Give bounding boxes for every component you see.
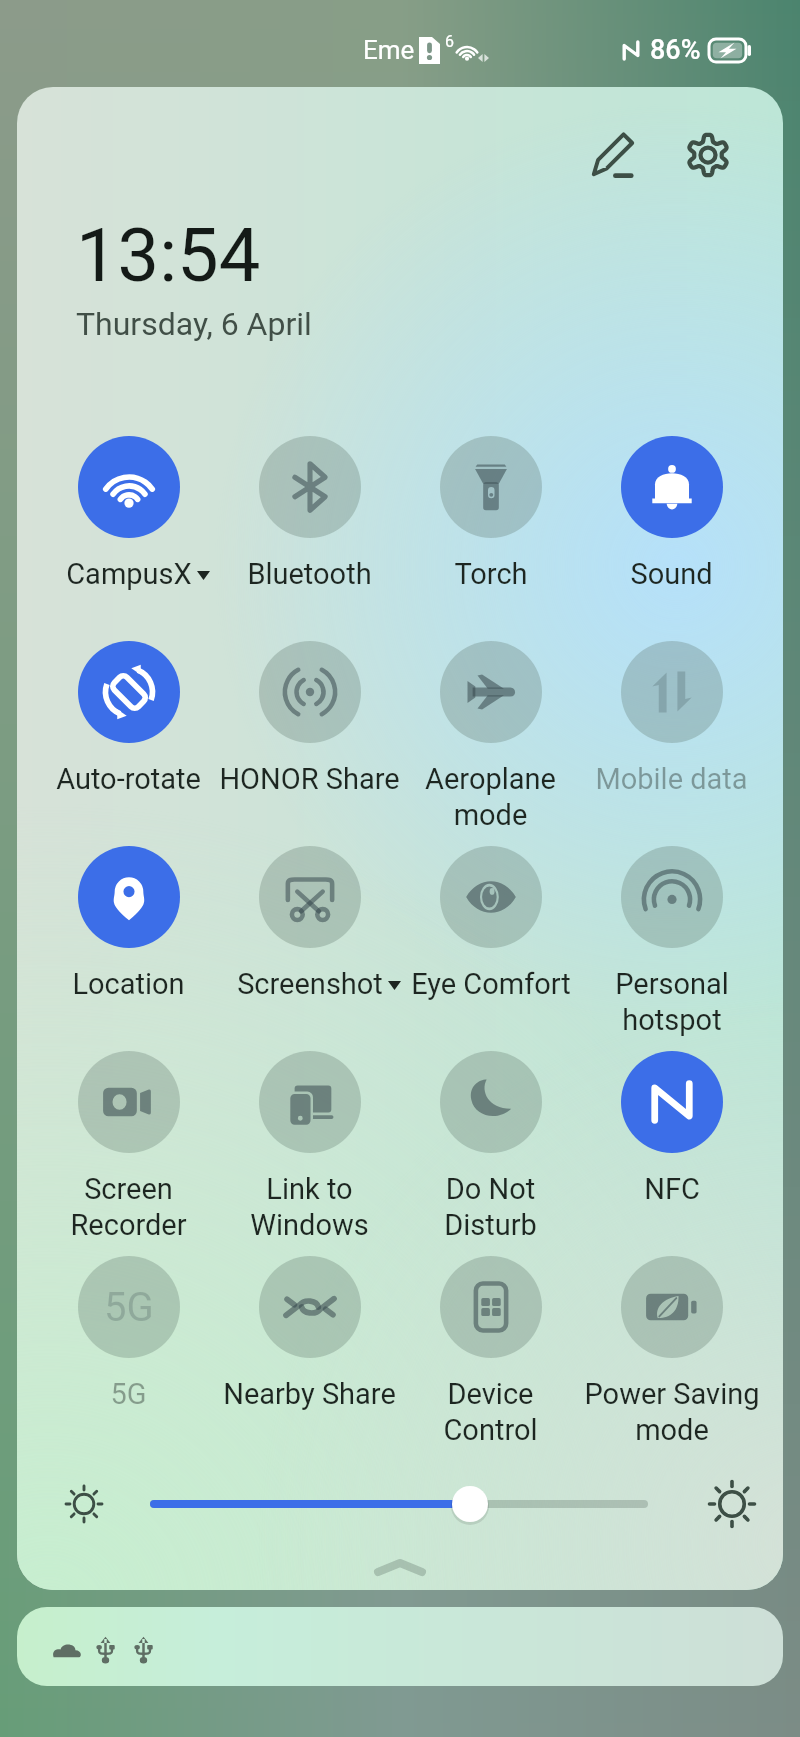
- button[interactable]: Screen Recorder: [38, 1051, 219, 1256]
- staticText: Mobile data: [595, 762, 748, 796]
- button[interactable]: Nearby Share: [219, 1256, 400, 1461]
- staticText: Eme: [363, 35, 415, 65]
- staticText: 5G: [104, 1284, 154, 1331]
- staticText: Power Saving mode: [584, 1377, 760, 1447]
- button[interactable]: Do Not Disturb: [400, 1051, 581, 1256]
- button[interactable]: Location: [38, 846, 219, 1051]
- staticText: Bluetooth: [247, 557, 372, 591]
- button[interactable]: Eye Comfort: [400, 846, 581, 1051]
- staticText: Thursday, 6 April: [76, 305, 312, 343]
- staticText: 6: [445, 32, 454, 51]
- button[interactable]: Aeroplane mode: [400, 641, 581, 846]
- button[interactable]: Personal hotspot: [581, 846, 762, 1051]
- staticText: HONOR Share: [219, 762, 400, 796]
- staticText: Screen Recorder: [70, 1172, 187, 1242]
- button[interactable]: Auto-rotate: [38, 641, 219, 846]
- staticText: Link to Windows: [250, 1172, 369, 1242]
- button[interactable]: Sound: [581, 436, 762, 641]
- staticText: Do Not Disturb: [444, 1172, 537, 1242]
- staticText: Device Control: [443, 1377, 538, 1447]
- staticText: Nearby Share: [223, 1377, 396, 1411]
- staticText: 86%: [650, 34, 701, 66]
- staticText: Location: [72, 967, 185, 1001]
- button[interactable]: Link to Windows: [219, 1051, 400, 1256]
- button[interactable]: NFC: [581, 1051, 762, 1256]
- button[interactable]: Mobile data: [581, 641, 762, 846]
- button[interactable]: [17, 1607, 783, 1686]
- staticText: CampusX: [66, 557, 192, 591]
- button[interactable]: Power Saving mode: [581, 1256, 762, 1461]
- staticText: 5G: [110, 1377, 147, 1411]
- staticText: Eye Comfort: [411, 967, 571, 1001]
- staticText: Sound: [630, 557, 713, 591]
- button[interactable]: HONOR Share: [219, 641, 400, 846]
- button[interactable]: Torch: [400, 436, 581, 641]
- button[interactable]: CampusX: [38, 436, 219, 641]
- button[interactable]: Edit quick settings: [583, 125, 643, 185]
- button[interactable]: Bluetooth: [219, 436, 400, 641]
- staticText: Aeroplane mode: [425, 762, 556, 832]
- staticText: 13:54: [76, 212, 261, 299]
- staticText: Personal hotspot: [615, 967, 729, 1037]
- staticText: Torch: [454, 557, 528, 591]
- button[interactable]: Device Control: [400, 1256, 581, 1461]
- button[interactable]: Settings: [678, 125, 738, 185]
- staticText: Auto-rotate: [56, 762, 201, 796]
- button[interactable]: 5G: [38, 1256, 219, 1461]
- staticText: Screenshot: [237, 967, 383, 1001]
- button[interactable]: Screenshot: [219, 846, 400, 1051]
- staticText: NFC: [644, 1172, 700, 1206]
